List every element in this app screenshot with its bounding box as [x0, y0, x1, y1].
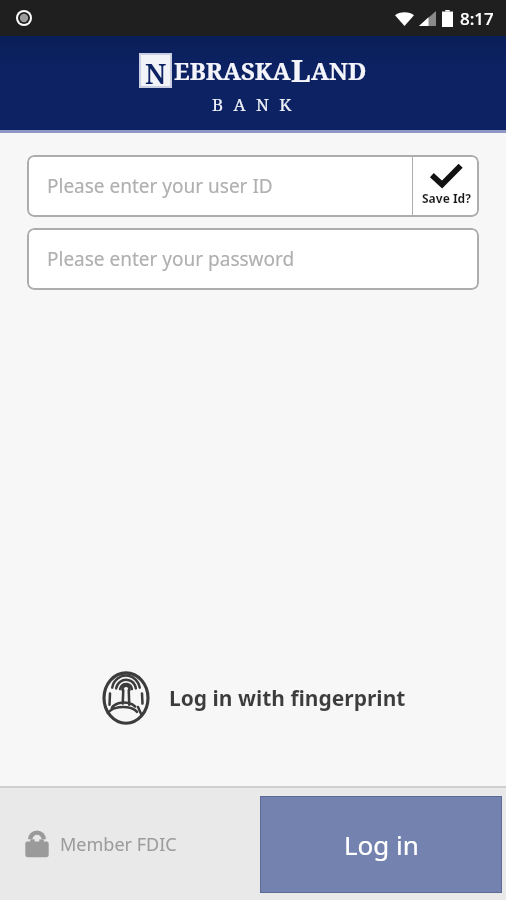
- button[interactable]: Log in with fingerprint: [0, 662, 506, 734]
- staticText: Member FDIC: [60, 832, 177, 857]
- staticText: B A N K: [212, 93, 295, 116]
- staticText: Save Id?: [422, 190, 471, 206]
- staticText: Log in with fingerprint: [169, 684, 406, 713]
- staticText: Please enter your user ID: [47, 173, 273, 199]
- staticText: L: [291, 50, 311, 91]
- button[interactable]: Please enter your user ID: [27, 155, 412, 217]
- staticText: N: [145, 55, 167, 86]
- staticText: Log in: [344, 827, 419, 862]
- staticText: EBRASKA: [174, 54, 291, 87]
- staticText: AND: [311, 54, 367, 87]
- button[interactable]: Member FDIC: [24, 829, 177, 859]
- staticText: 8:17: [460, 7, 494, 30]
- staticText: Please enter your password: [47, 246, 295, 272]
- button[interactable]: Log in: [260, 796, 502, 893]
- button[interactable]: Save Id: [413, 155, 479, 217]
- button[interactable]: Please enter your password: [27, 228, 479, 290]
